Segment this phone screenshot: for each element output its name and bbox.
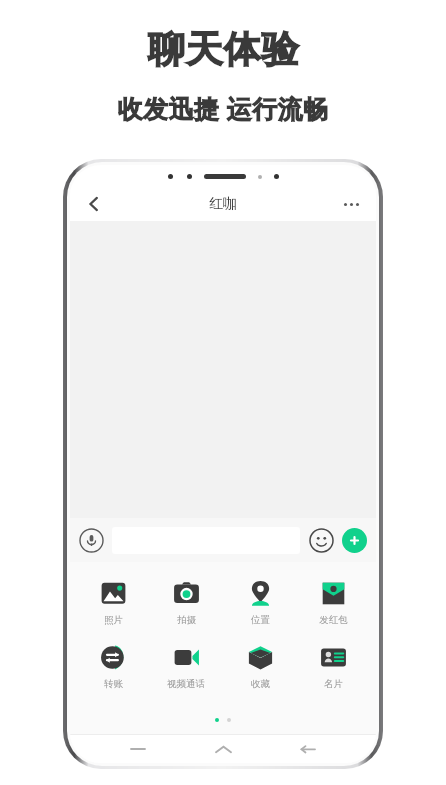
staticText: 视频通话 <box>167 678 205 690</box>
button[interactable]: Emoji <box>309 528 334 553</box>
button[interactable]: 收藏 <box>229 642 291 692</box>
button[interactable]: 转账 <box>82 642 144 692</box>
staticText: 红咖 <box>209 195 237 213</box>
button[interactable]: Recents <box>121 735 155 763</box>
button[interactable]: 视频通话 <box>155 642 217 692</box>
button[interactable]: More options <box>336 189 366 219</box>
staticText: 位置 <box>251 614 270 626</box>
staticText: 聊天体验 <box>147 26 299 73</box>
staticText: 发红包 <box>319 614 348 626</box>
button[interactable]: Back <box>291 735 325 763</box>
button[interactable]: Back <box>78 188 110 220</box>
button[interactable]: 照片 <box>82 578 144 628</box>
staticText: 收发迅捷 运行流畅 <box>117 91 329 125</box>
button[interactable]: 发红包 <box>302 578 364 628</box>
staticText: 名片 <box>324 678 343 690</box>
button[interactable]: 位置 <box>229 578 291 628</box>
button[interactable]: 名片 <box>302 642 364 692</box>
staticText: 转账 <box>104 678 123 690</box>
button[interactable]: 拍摄 <box>155 578 217 628</box>
staticText: 照片 <box>104 614 123 626</box>
button[interactable]: Voice message <box>79 528 104 553</box>
staticText: 收藏 <box>251 678 270 690</box>
staticText: 拍摄 <box>177 614 196 626</box>
button[interactable]: More actions <box>342 528 367 553</box>
button[interactable]: Home <box>206 735 240 763</box>
